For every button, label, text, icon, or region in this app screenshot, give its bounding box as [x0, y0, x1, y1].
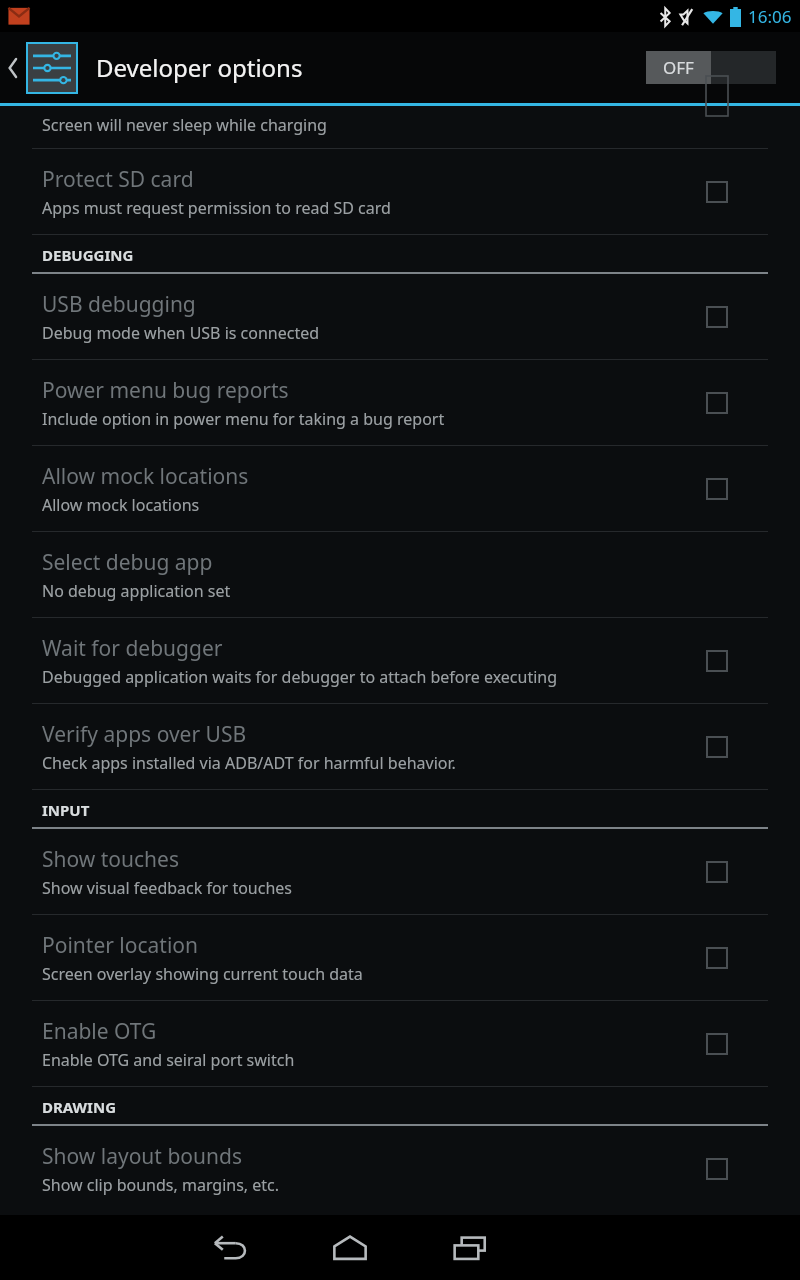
- staticText: Show layout bounds: [42, 1142, 242, 1171]
- staticText: Wait for debugger: [42, 634, 223, 663]
- button[interactable]: Enable OTG: [0, 1001, 800, 1087]
- staticText: Apps must request permission to read SD …: [42, 197, 391, 219]
- button[interactable]: Power menu bug reports: [0, 360, 800, 446]
- staticText: DEBUGGING: [42, 245, 134, 265]
- staticText: Debugged application waits for debugger …: [42, 666, 558, 688]
- staticText: OFF: [663, 56, 694, 79]
- staticText: No debug application set: [42, 580, 231, 602]
- staticText: Enable OTG: [42, 1017, 157, 1046]
- staticText: Select debug app: [42, 548, 213, 577]
- button[interactable]: Show touches: [0, 829, 800, 915]
- button[interactable]: Back: [170, 1215, 290, 1280]
- button[interactable]: Wait for debugger: [0, 618, 800, 704]
- button[interactable]: Wait for debugger: [706, 650, 728, 672]
- button[interactable]: Navigate up: [0, 42, 80, 94]
- staticText: Screen will never sleep while charging: [42, 114, 327, 136]
- button[interactable]: OFF: [646, 51, 776, 84]
- button[interactable]: Power menu bug reports: [706, 392, 728, 414]
- button[interactable]: Select debug app: [0, 532, 800, 618]
- staticText: Show touches: [42, 845, 179, 874]
- button[interactable]: Allow mock locations: [0, 446, 800, 532]
- button[interactable]: USB debugging: [706, 306, 728, 328]
- staticText: Include option in power menu for taking …: [42, 408, 445, 430]
- button[interactable]: USB debugging: [0, 274, 800, 360]
- button[interactable]: Home: [290, 1215, 410, 1280]
- staticText: Pointer location: [42, 931, 199, 960]
- staticText: Allow mock locations: [42, 462, 249, 491]
- staticText: USB debugging: [42, 290, 196, 319]
- button[interactable]: Pointer location: [0, 915, 800, 1001]
- staticText: Debug mode when USB is connected: [42, 322, 320, 344]
- button[interactable]: Show layout bounds: [0, 1126, 800, 1212]
- button[interactable]: Verify apps over USB: [706, 736, 728, 758]
- button[interactable]: Enable OTG: [706, 1033, 728, 1055]
- staticText: Enable OTG and seiral port switch: [42, 1049, 295, 1071]
- button[interactable]: Show layout bounds: [706, 1158, 728, 1180]
- button[interactable]: Allow mock locations: [706, 478, 728, 500]
- staticText: Power menu bug reports: [42, 376, 289, 405]
- staticText: Verify apps over USB: [42, 720, 247, 749]
- button[interactable]: Recent apps: [410, 1215, 530, 1280]
- staticText: DRAWING: [42, 1097, 116, 1117]
- staticText: Allow mock locations: [42, 494, 200, 516]
- staticText: Check apps installed via ADB/ADT for har…: [42, 752, 456, 774]
- staticText: Screen overlay showing current touch dat…: [42, 963, 363, 985]
- button[interactable]: Pointer location: [706, 947, 728, 969]
- staticText: Show visual feedback for touches: [42, 877, 292, 899]
- button[interactable]: Show touches: [706, 861, 728, 883]
- button[interactable]: Screen will never sleep while charging: [0, 106, 800, 149]
- staticText: 16:06: [748, 5, 792, 28]
- staticText: Developer options: [96, 51, 646, 84]
- button[interactable]: Protect SD card: [706, 181, 728, 203]
- staticText: INPUT: [42, 800, 90, 820]
- button[interactable]: Protect SD card: [0, 149, 800, 235]
- button[interactable]: Verify apps over USB: [0, 704, 800, 790]
- staticText: Show clip bounds, margins, etc.: [42, 1174, 280, 1196]
- staticText: Protect SD card: [42, 165, 194, 194]
